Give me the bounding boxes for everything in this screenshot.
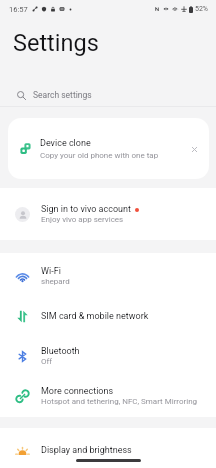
button[interactable]: More connections <box>0 376 216 416</box>
staticText: Device clone <box>40 138 91 149</box>
staticText: Sign in to vivo account <box>41 204 131 215</box>
button[interactable]: Dismiss device clone <box>188 143 200 155</box>
staticText: Copy your old phone with one tap <box>40 151 159 160</box>
button[interactable]: Wi-Fi <box>0 256 216 296</box>
staticText: shepard <box>41 277 70 286</box>
staticText: SIM card & mobile network <box>41 311 149 322</box>
staticText: 52% <box>195 5 208 13</box>
staticText: Off <box>41 357 53 366</box>
staticText: 16:57 <box>9 5 28 14</box>
button[interactable]: SIM card & mobile network <box>0 296 216 336</box>
staticText: More connections <box>41 386 114 397</box>
staticText: Enjoy vivo app services <box>41 215 124 224</box>
staticText: Search settings <box>33 90 92 100</box>
button[interactable]: Device clone <box>8 118 209 179</box>
staticText: Bluetooth <box>41 346 80 357</box>
staticText: Display and brightness <box>41 445 132 456</box>
button[interactable]: Search settings <box>0 84 216 106</box>
staticText: Hotspot and tethering, NFC, Smart Mirror… <box>41 397 198 406</box>
button[interactable]: Display and brightness <box>0 433 216 468</box>
button[interactable]: Bluetooth <box>0 336 216 376</box>
button[interactable]: Sign in to vivo account <box>0 188 216 240</box>
staticText: Settings <box>13 29 99 57</box>
staticText: Wi-Fi <box>41 266 61 277</box>
